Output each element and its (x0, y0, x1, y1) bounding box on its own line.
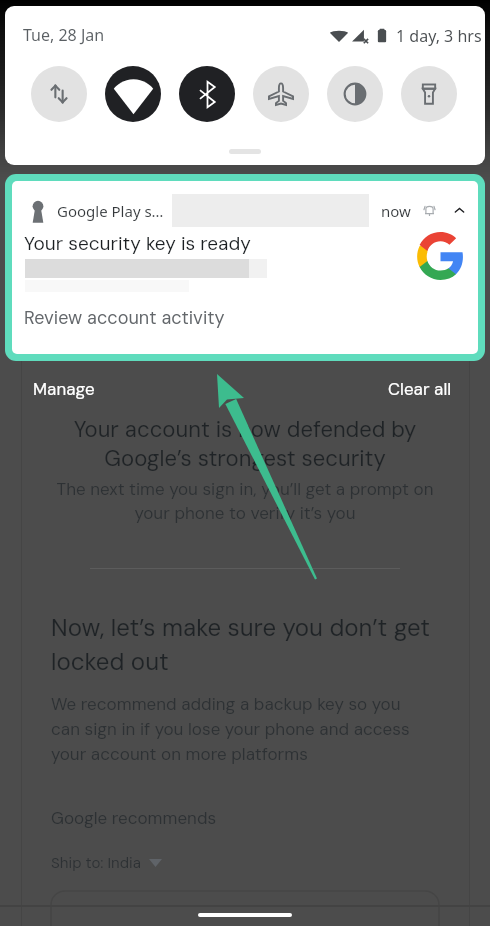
staticText: Manage (33, 378, 95, 400)
staticText: Your account is now defended by Google’s… (30, 415, 460, 473)
staticText: now (381, 201, 411, 221)
button[interactable]: Manage (25, 370, 103, 408)
button[interactable]: Dark theme (327, 66, 383, 122)
button[interactable]: Clear all (380, 370, 460, 408)
staticText: The next time you sign in, you’ll get a … (30, 478, 460, 525)
button[interactable]: Internet (31, 66, 87, 122)
staticText: Google recommends (51, 807, 217, 829)
button[interactable]: Google Play s… (12, 181, 478, 354)
button[interactable]: Ship to: India (51, 853, 162, 873)
staticText: Now, let’s make sure you don’t get locke… (51, 612, 430, 677)
button[interactable]: Bluetooth (179, 66, 235, 122)
staticText: Ship to: India (51, 853, 141, 873)
button[interactable]: Airplane mode (253, 66, 309, 122)
staticText: Your security key is ready (24, 231, 251, 256)
button[interactable]: Flashlight (401, 66, 457, 122)
staticText: Google Play s… (57, 201, 164, 221)
staticText: Tue, 28 Jan (23, 24, 105, 46)
staticText: We recommend adding a backup key so you … (51, 693, 410, 765)
staticText: Review account activity (24, 306, 225, 329)
button[interactable]: Wi-Fi (105, 66, 161, 122)
staticText: 1 day, 3 hrs (396, 25, 482, 47)
staticText: Clear all (388, 378, 452, 400)
